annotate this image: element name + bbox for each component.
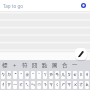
staticText: 圖 xyxy=(52,62,58,69)
staticText: ㄇ xyxy=(37,82,41,88)
staticText: ㄉ xyxy=(7,72,11,78)
staticText: ˇ xyxy=(14,72,17,78)
button[interactable]: ㄇ xyxy=(37,81,41,89)
button[interactable]: Tap to go xyxy=(3,3,24,9)
staticText: ㄐ xyxy=(85,72,89,78)
button[interactable]: 合 xyxy=(60,60,70,71)
staticText: ㄎ xyxy=(49,82,53,88)
staticText: ㄕ xyxy=(61,82,65,88)
staticText: ˋ xyxy=(20,72,22,78)
staticText: ㄣ xyxy=(31,82,35,88)
button[interactable]: ㄑ xyxy=(55,81,59,89)
staticText: ㄞ xyxy=(49,72,53,78)
button[interactable]: 符 xyxy=(20,60,30,71)
button[interactable]: ㄧ xyxy=(13,81,17,89)
staticText: ㄘ xyxy=(67,82,71,88)
button[interactable]: 囧 xyxy=(30,60,40,71)
button[interactable]: ㄚ xyxy=(43,71,47,79)
staticText: ＋ xyxy=(12,62,18,69)
button[interactable]: ㄉ xyxy=(7,71,11,79)
button[interactable]: 點 xyxy=(40,60,50,71)
staticText: ㄆ xyxy=(67,72,71,78)
button[interactable]: ㄜ xyxy=(79,81,83,89)
staticText: 合 xyxy=(62,62,68,69)
button[interactable]: ㄗ xyxy=(7,81,11,89)
staticText: ㄛ xyxy=(19,82,23,88)
button[interactable]: ㄋ xyxy=(43,81,47,89)
button[interactable]: 一 xyxy=(70,60,80,71)
staticText: ㄊ xyxy=(73,72,77,78)
staticText: ㄅ xyxy=(1,72,5,78)
staticText: ˊ xyxy=(32,72,34,78)
staticText: ㄔ xyxy=(1,82,5,88)
staticText: 標 xyxy=(2,62,8,69)
button[interactable]: ㄊ xyxy=(73,71,77,79)
button[interactable]: ㄎ xyxy=(49,81,53,89)
staticText: ㄢ xyxy=(55,72,59,78)
staticText: ㄠ xyxy=(85,82,89,88)
staticText: Tap to go xyxy=(3,3,24,9)
staticText: ㄋ xyxy=(43,82,47,88)
button[interactable]: Account xyxy=(81,3,86,8)
button[interactable]: ㄘ xyxy=(67,81,71,89)
button[interactable]: ˇ xyxy=(13,71,17,79)
button[interactable]: ˋ xyxy=(19,71,23,79)
staticText: ㄍ xyxy=(79,72,83,78)
staticText: ˙ xyxy=(38,72,40,78)
staticText: 囧 xyxy=(32,62,38,69)
button[interactable]: ㄅ xyxy=(1,71,5,79)
button[interactable]: ㄕ xyxy=(61,81,65,89)
button[interactable]: ㄆ xyxy=(67,71,71,79)
button[interactable]: ㄦ xyxy=(61,71,65,79)
button[interactable]: ㄛ xyxy=(19,81,23,89)
staticText: 符 xyxy=(22,62,28,69)
button[interactable]: Compose xyxy=(75,48,87,60)
staticText: ㄧ xyxy=(13,82,17,88)
staticText: ㄑ xyxy=(55,82,59,88)
button[interactable]: ㄣ xyxy=(31,81,35,89)
button[interactable]: ㄟ xyxy=(25,81,29,89)
button[interactable]: ㄢ xyxy=(55,71,59,79)
staticText: 點 xyxy=(42,62,48,69)
button[interactable]: ㄠ xyxy=(85,81,89,89)
button[interactable]: ㄐ xyxy=(85,71,89,79)
button[interactable]: ㄍ xyxy=(79,71,83,79)
staticText: ㄓ xyxy=(25,72,29,78)
button[interactable]: ˊ xyxy=(31,71,35,79)
staticText: ㄚ xyxy=(43,72,47,78)
button[interactable]: 標 xyxy=(0,60,10,71)
button[interactable]: 圖 xyxy=(50,60,60,71)
button[interactable]: ㄨ xyxy=(73,81,77,89)
staticText: ㄨ xyxy=(73,82,77,88)
staticText: ㄜ xyxy=(79,82,83,88)
button[interactable]: ＋ xyxy=(10,60,20,71)
staticText: ㄗ xyxy=(7,82,11,88)
button[interactable]: ㄞ xyxy=(49,71,53,79)
button[interactable]: ˙ xyxy=(37,71,41,79)
staticText: ㄦ xyxy=(61,72,65,78)
staticText: 一 xyxy=(72,62,78,69)
button[interactable]: ㄓ xyxy=(25,71,29,79)
staticText: ㄟ xyxy=(25,82,29,88)
button[interactable]: ㄔ xyxy=(1,81,5,89)
